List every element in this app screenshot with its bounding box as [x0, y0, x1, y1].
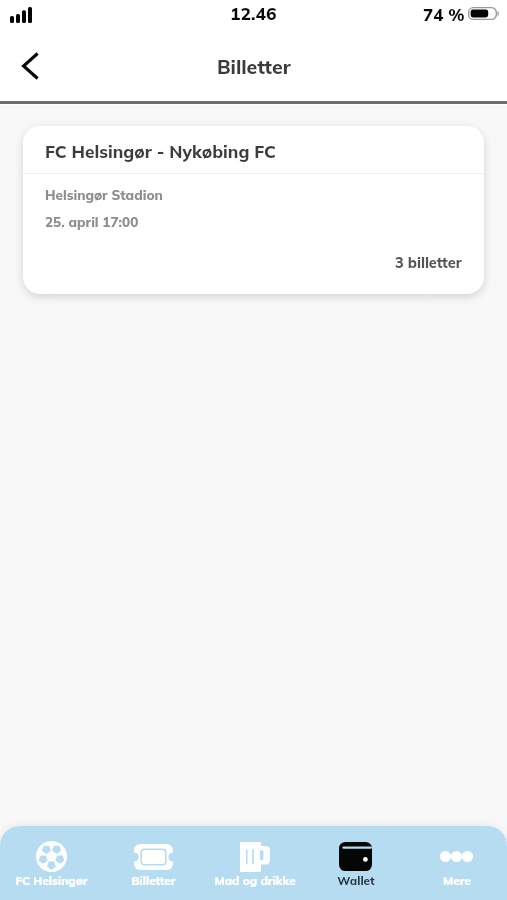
staticText: FC Helsingør	[15, 873, 88, 888]
staticText: Billetter	[131, 873, 176, 888]
staticText: Billetter	[217, 54, 291, 78]
button[interactable]: Mere	[406, 826, 507, 900]
button[interactable]: Mad og drikke	[204, 826, 305, 900]
button[interactable]: Back	[6, 42, 54, 90]
button[interactable]: FC Helsingør - Nykøbing FC	[23, 126, 484, 294]
staticText: 74 %	[423, 4, 465, 25]
button[interactable]: FC Helsingør	[0, 826, 102, 900]
staticText: Mad og drikke	[214, 873, 296, 888]
staticText: Mere	[443, 873, 471, 888]
staticText: FC Helsingør - Nykøbing FC	[45, 141, 276, 163]
staticText: Wallet	[337, 873, 375, 888]
button[interactable]: Billetter	[102, 826, 204, 900]
button[interactable]: Wallet	[305, 826, 406, 900]
staticText: 3 billetter	[395, 253, 462, 271]
staticText: 12.46	[230, 2, 277, 24]
staticText: 25. april 17:00	[45, 213, 139, 230]
staticText: Helsingør Stadion	[45, 186, 163, 203]
